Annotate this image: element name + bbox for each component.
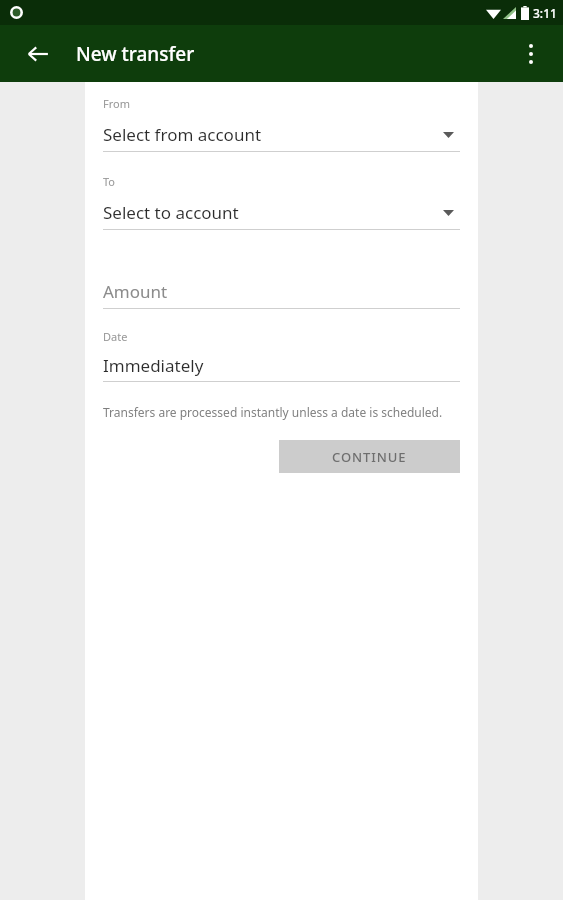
staticText: Select to account [103, 201, 239, 224]
staticText: New transfer [76, 41, 195, 67]
button[interactable]: CONTINUE [279, 440, 460, 473]
button[interactable]: Immediately [103, 352, 460, 378]
button[interactable]: Back [12, 28, 64, 80]
staticText: To [103, 174, 116, 189]
button[interactable]: More options [507, 30, 555, 78]
button[interactable]: Select to account [103, 198, 460, 230]
button[interactable]: Amount [103, 276, 460, 306]
staticText: From [103, 96, 130, 111]
button[interactable]: Select from account [103, 120, 460, 152]
staticText: Immediately [103, 354, 204, 377]
staticText: CONTINUE [332, 448, 407, 466]
staticText: Amount [103, 280, 168, 303]
staticText: Date [103, 329, 128, 344]
staticText: Select from account [103, 123, 262, 146]
staticText: Transfers are processed instantly unless… [103, 404, 443, 420]
staticText: 3:11 [533, 5, 557, 21]
